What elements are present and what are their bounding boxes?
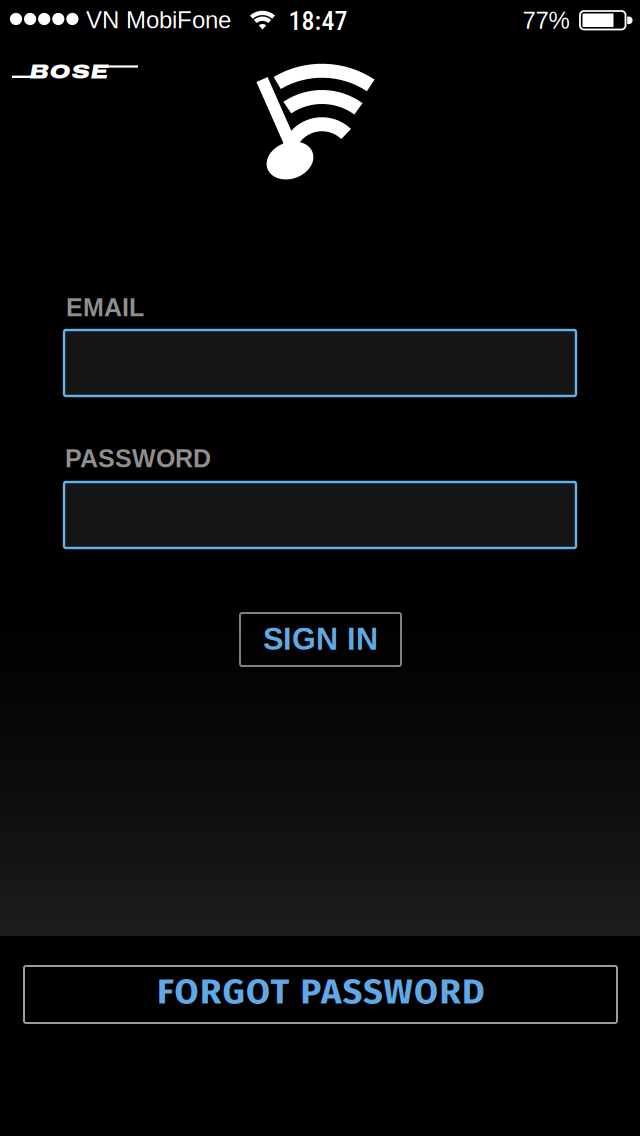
staticText: FORGOT PASSWORD: [157, 971, 485, 1013]
staticText: VN MobiFone: [86, 7, 231, 33]
staticText: SIGN IN: [263, 622, 378, 656]
staticText: 77%: [522, 7, 569, 34]
staticText: 18:47: [288, 6, 347, 36]
staticText: EMAIL: [66, 293, 144, 321]
staticText: BOSE: [29, 60, 108, 83]
staticText: PASSWORD: [65, 444, 211, 472]
